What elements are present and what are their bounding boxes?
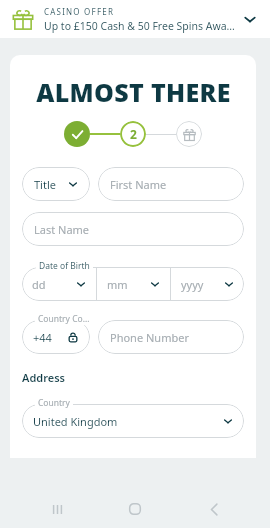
button[interactable]: Home <box>113 490 157 528</box>
button[interactable]: First Name <box>98 167 244 201</box>
button[interactable]: Back <box>192 490 236 528</box>
staticText: Country <box>38 397 70 409</box>
staticText: Date of Birth <box>39 260 90 272</box>
button[interactable]: Title <box>22 167 90 201</box>
button[interactable]: 2 <box>120 121 146 147</box>
button[interactable]: Expand offer details <box>236 5 264 33</box>
staticText: Country Co… <box>38 313 90 325</box>
button[interactable]: dd <box>22 267 96 301</box>
staticText: ALMOST THERE <box>36 75 231 109</box>
staticText: Last Name <box>34 222 90 237</box>
button[interactable]: Phone Number <box>98 320 244 354</box>
staticText: First Name <box>110 177 167 192</box>
staticText: Address <box>22 370 65 385</box>
button[interactable]: +44 <box>22 320 90 354</box>
staticText: Title <box>34 177 56 192</box>
button[interactable]: Step 1 complete <box>64 121 90 147</box>
button[interactable]: Recent apps <box>35 490 79 528</box>
button[interactable]: yyyy <box>171 267 244 301</box>
staticText: Phone Number <box>110 330 189 345</box>
staticText: CASINO OFFER <box>44 6 115 17</box>
button[interactable]: CASINO OFFER <box>0 0 270 38</box>
staticText: 2 <box>130 126 137 142</box>
staticText: mm <box>107 277 128 292</box>
staticText: yyyy <box>181 277 204 292</box>
button[interactable]: United Kingdom <box>22 404 244 438</box>
staticText: +44 <box>33 330 52 345</box>
button[interactable]: Last Name <box>22 212 244 246</box>
staticText: United Kingdom <box>33 414 118 429</box>
staticText: Up to £150 Cash & 50 Free Spins Awa… <box>44 19 235 33</box>
button[interactable]: mm <box>97 267 170 301</box>
staticText: dd <box>32 277 46 292</box>
button[interactable]: Step 3 reward <box>176 121 202 147</box>
